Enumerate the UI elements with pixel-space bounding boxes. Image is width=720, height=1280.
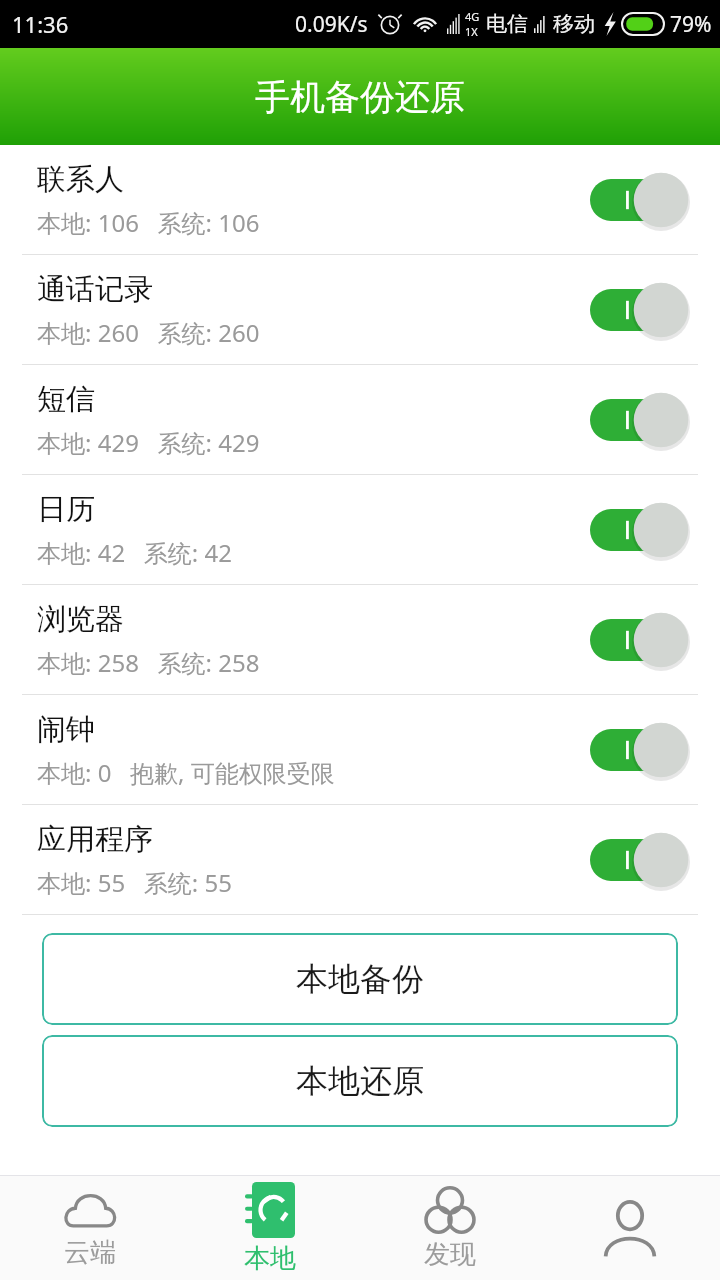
staticText: 移动: [553, 11, 595, 37]
staticText: 电信: [486, 11, 528, 37]
staticText: 本地: 429 系统: 429: [37, 426, 260, 459]
staticText: 短信: [37, 381, 95, 418]
staticText: 本地: 55 系统: 55: [37, 866, 232, 899]
button[interactable]: 云端: [0, 1176, 180, 1280]
button[interactable]: 闹钟: [0, 695, 720, 805]
staticText: 11:36: [12, 9, 69, 39]
staticText: 日历: [37, 491, 95, 528]
staticText: 手机备份还原: [255, 75, 465, 119]
button[interactable]: 联系人: [0, 145, 720, 255]
button[interactable]: 浏览器: [0, 585, 720, 695]
staticText: 本地: 258 系统: 258: [37, 646, 260, 679]
button[interactable]: 本地还原: [42, 1035, 678, 1127]
staticText: 1X: [465, 24, 478, 39]
staticText: 通话记录: [37, 271, 153, 308]
staticText: 云端: [64, 1236, 116, 1269]
button[interactable]: 通话记录: [0, 255, 720, 365]
staticText: 0.09K/s: [295, 10, 368, 39]
button[interactable]: 短信: [0, 365, 720, 475]
staticText: 本地: 0 抱歉, 可能权限受限: [37, 756, 335, 789]
button[interactable]: 本地: [180, 1176, 360, 1280]
staticText: 应用程序: [37, 821, 153, 858]
staticText: 浏览器: [37, 601, 124, 638]
button[interactable]: 我的: [540, 1176, 720, 1280]
staticText: 本地还原: [296, 1061, 424, 1101]
button[interactable]: 发现: [360, 1176, 540, 1280]
staticText: 联系人: [37, 161, 124, 198]
staticText: 本地备份: [296, 959, 424, 999]
button[interactable]: 日历: [0, 475, 720, 585]
button[interactable]: 应用程序: [0, 805, 720, 915]
staticText: 本地: [244, 1242, 296, 1275]
staticText: 79%: [670, 10, 712, 39]
staticText: 闹钟: [37, 711, 95, 748]
button[interactable]: 本地备份: [42, 933, 678, 1025]
staticText: 4G: [465, 9, 480, 24]
staticText: 本地: 42 系统: 42: [37, 536, 232, 569]
staticText: 本地: 260 系统: 260: [37, 316, 260, 349]
staticText: 本地: 106 系统: 106: [37, 206, 260, 239]
staticText: 发现: [424, 1238, 476, 1271]
